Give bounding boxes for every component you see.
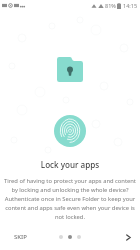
staticText: SKIP [14, 233, 27, 241]
staticText: Tired of having to protect your apps and… [0, 177, 140, 221]
button[interactable]: SKIP [0, 227, 38, 247]
button[interactable]: Next [117, 229, 140, 246]
staticText: 14:15 [123, 2, 138, 9]
staticText: 81% [105, 2, 116, 9]
staticText: Lock your apps [0, 159, 140, 170]
